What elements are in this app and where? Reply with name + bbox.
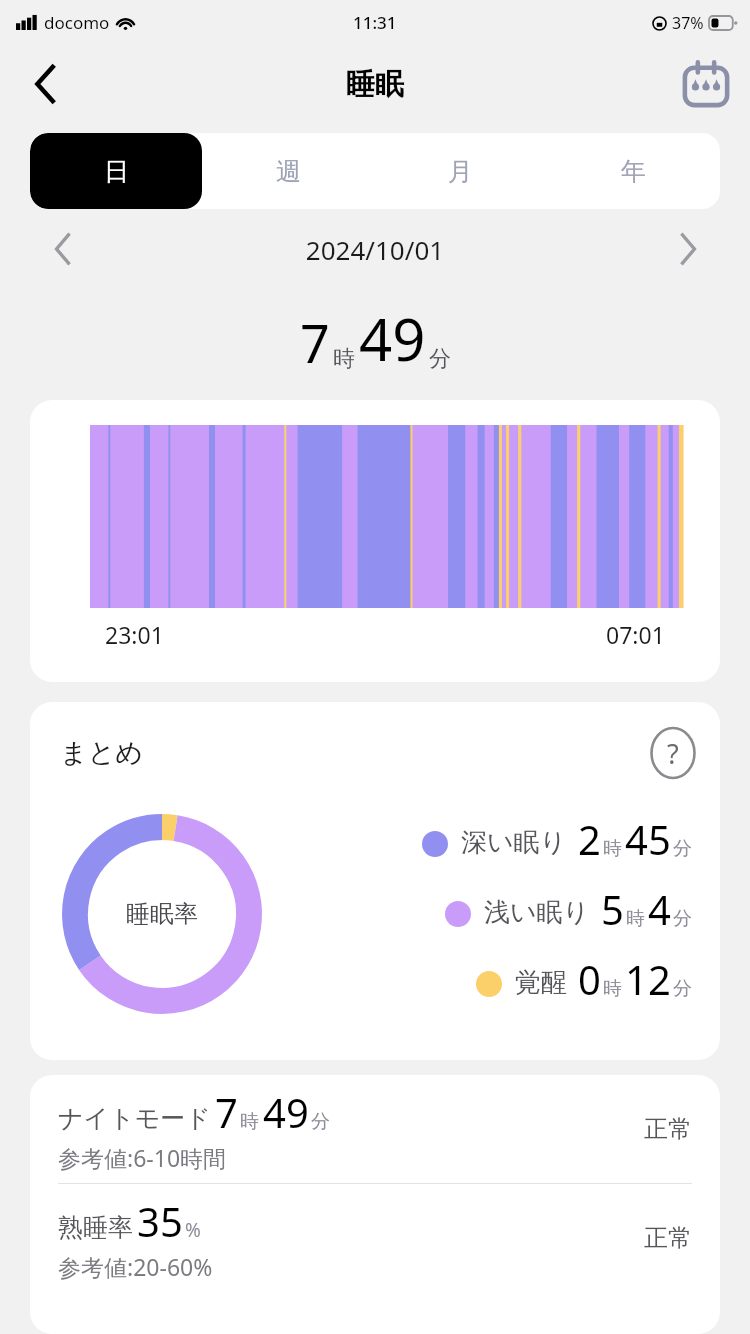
staticText: ナイトモード (58, 1103, 211, 1134)
staticText: 2024/10/01 (94, 232, 656, 267)
button[interactable]: ナイトモード (30, 1075, 720, 1183)
staticText: 37% (672, 12, 704, 34)
staticText: まとめ (60, 736, 143, 770)
button[interactable]: Calendar (676, 54, 736, 114)
button[interactable]: 熟睡率 (30, 1184, 720, 1292)
staticText: 分 (429, 345, 451, 373)
staticText: 7 (300, 307, 330, 378)
staticText: 時 (603, 837, 622, 861)
staticText: 07:01 (606, 619, 665, 650)
staticText: 日 (104, 156, 129, 187)
staticText: 年 (621, 156, 646, 187)
staticText: 時 (333, 345, 355, 373)
staticText: 参考値:20-60% (58, 1251, 213, 1282)
staticText: 2 (578, 812, 601, 866)
button[interactable]: 日 (30, 133, 202, 209)
button[interactable]: 年 (547, 133, 720, 209)
staticText: 分 (673, 837, 692, 861)
staticText: 時 (603, 977, 622, 1001)
staticText: 12 (625, 952, 671, 1006)
button[interactable]: 浅い眠り (445, 882, 692, 936)
staticText: 分 (673, 977, 692, 1001)
staticText: 11:31 (353, 11, 397, 34)
button[interactable]: Help (644, 724, 702, 782)
staticText: 49 (263, 1085, 309, 1139)
staticText: 浅い眠り (484, 896, 590, 929)
button[interactable]: Previous day (30, 221, 94, 277)
staticText: 睡眠率 (126, 899, 198, 929)
staticText: 正常 (644, 1114, 692, 1144)
staticText: 5 (601, 882, 624, 936)
staticText: 睡眠 (346, 66, 404, 103)
staticText: 0 (578, 952, 601, 1006)
button[interactable]: 月 (374, 133, 547, 209)
button[interactable]: 深い眠り (422, 812, 692, 866)
staticText: 7 (215, 1085, 238, 1139)
staticText: 分 (311, 1110, 330, 1134)
staticText: 時 (240, 1110, 259, 1134)
button[interactable]: 週 (202, 133, 374, 209)
staticText: 23:01 (105, 619, 164, 650)
button[interactable]: Next day (656, 221, 720, 277)
staticText: 35 (137, 1194, 183, 1248)
staticText: docomo (44, 11, 110, 34)
staticText: 49 (359, 299, 426, 378)
staticText: 覚醒 (515, 966, 567, 999)
staticText: 時 (626, 907, 645, 931)
button[interactable]: 覚醒 (476, 952, 692, 1006)
staticText: 月 (448, 156, 473, 187)
staticText: ? (667, 735, 679, 772)
staticText: 45 (625, 812, 671, 866)
staticText: 4 (648, 882, 671, 936)
button[interactable]: Back (18, 56, 74, 112)
staticText: 深い眠り (461, 826, 567, 859)
staticText: % (185, 1217, 201, 1243)
staticText: 分 (673, 907, 692, 931)
staticText: 参考値:6-10時間 (58, 1142, 227, 1173)
staticText: 週 (276, 156, 301, 187)
staticText: 正常 (644, 1223, 692, 1253)
staticText: 熟睡率 (58, 1212, 133, 1243)
